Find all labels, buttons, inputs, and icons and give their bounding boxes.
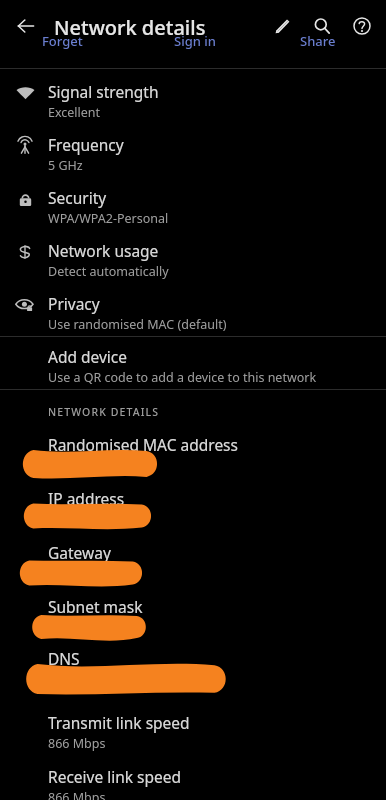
button[interactable]: Help — [342, 6, 382, 46]
button[interactable]: Search — [302, 6, 342, 46]
button[interactable]: Signal strength — [0, 69, 386, 123]
button[interactable]: Security — [0, 176, 386, 229]
button[interactable]: Add device — [0, 337, 386, 389]
button[interactable]: Forget — [42, 32, 83, 50]
staticText: 5 GHz — [48, 157, 83, 174]
button[interactable]: Back — [6, 6, 46, 46]
staticText: Randomised MAC address — [48, 434, 238, 455]
staticText: Signal strength — [48, 81, 159, 102]
button[interactable]: Sign in — [174, 32, 216, 50]
button[interactable]: Privacy — [0, 282, 386, 336]
staticText: 866 Mbps — [48, 735, 106, 752]
staticText: Use a QR code to add a device to this ne… — [48, 369, 317, 386]
staticText: Security — [48, 187, 107, 208]
staticText: Share — [300, 32, 336, 50]
staticText: Use randomised MAC (default) — [48, 316, 227, 333]
button[interactable]: Edit — [262, 6, 302, 46]
staticText: Excellent — [48, 104, 101, 121]
staticText: IP address — [48, 488, 125, 509]
staticText: Forget — [42, 32, 83, 50]
staticText: Detect automatically — [48, 263, 169, 280]
staticText: WPA/WPA2-Personal — [48, 210, 169, 227]
button[interactable]: Frequency — [0, 123, 386, 176]
staticText: Sign in — [174, 32, 216, 50]
button[interactable]: Network usage — [0, 229, 386, 282]
staticText: DNS — [48, 648, 80, 669]
staticText: Privacy — [48, 293, 100, 314]
staticText: Gateway — [48, 542, 111, 563]
staticText: 866 Mbps — [48, 789, 106, 800]
staticText: NETWORK DETAILS — [48, 405, 160, 419]
staticText: Transmit link speed — [48, 712, 190, 733]
staticText: Receive link speed — [48, 766, 182, 787]
staticText: Subnet mask — [48, 596, 143, 617]
staticText: Add device — [48, 346, 128, 367]
staticText: Network details — [54, 14, 206, 41]
staticText: Frequency — [48, 134, 124, 155]
staticText: Network usage — [48, 240, 159, 261]
button[interactable]: Share — [300, 32, 336, 50]
